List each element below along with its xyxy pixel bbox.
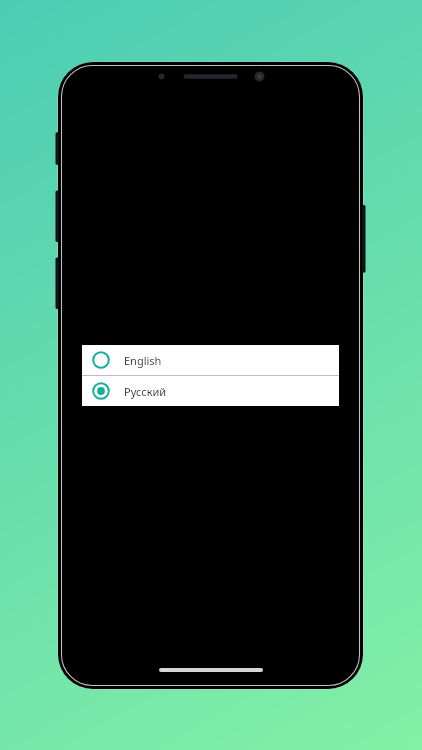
button[interactable]: English [82,345,339,375]
button[interactable]: Русский selected [82,376,339,406]
other: Русский selected [90,380,112,402]
staticText: Русский [124,384,167,399]
staticText: English [124,353,162,368]
other: English [90,349,112,371]
